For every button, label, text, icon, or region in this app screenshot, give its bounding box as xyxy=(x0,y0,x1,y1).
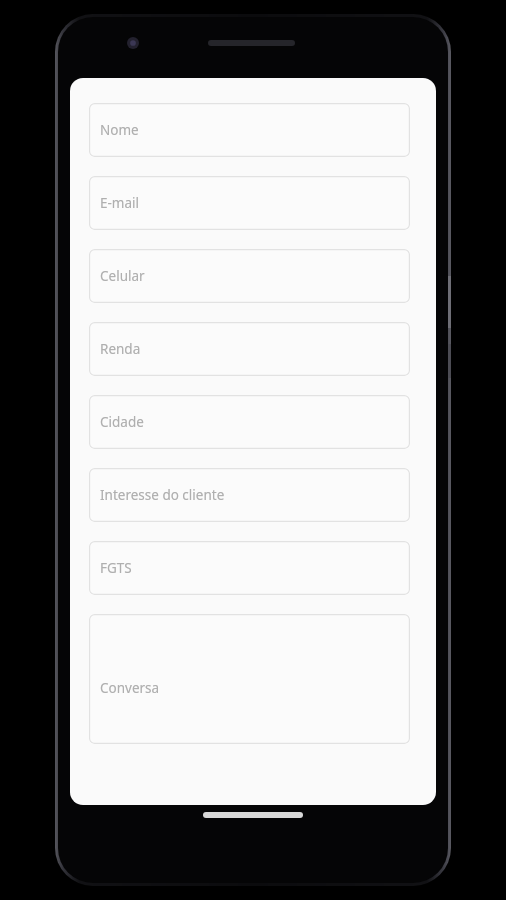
staticText: FGTS xyxy=(100,559,132,577)
button[interactable]: Celular xyxy=(89,249,410,303)
other: Home xyxy=(203,812,303,818)
button[interactable]: Conversa xyxy=(89,614,410,744)
staticText: Nome xyxy=(100,121,139,139)
button[interactable]: Cidade xyxy=(89,395,410,449)
staticText: Cidade xyxy=(100,413,144,431)
button[interactable]: Renda xyxy=(89,322,410,376)
button[interactable]: E-mail xyxy=(89,176,410,230)
staticText: Conversa xyxy=(100,679,160,697)
button[interactable]: Nome xyxy=(89,103,410,157)
button[interactable]: FGTS xyxy=(89,541,410,595)
staticText: Celular xyxy=(100,267,145,285)
staticText: Renda xyxy=(100,340,141,358)
button[interactable]: Interesse do cliente xyxy=(89,468,410,522)
staticText: E-mail xyxy=(100,194,140,212)
staticText: Interesse do cliente xyxy=(100,486,225,504)
